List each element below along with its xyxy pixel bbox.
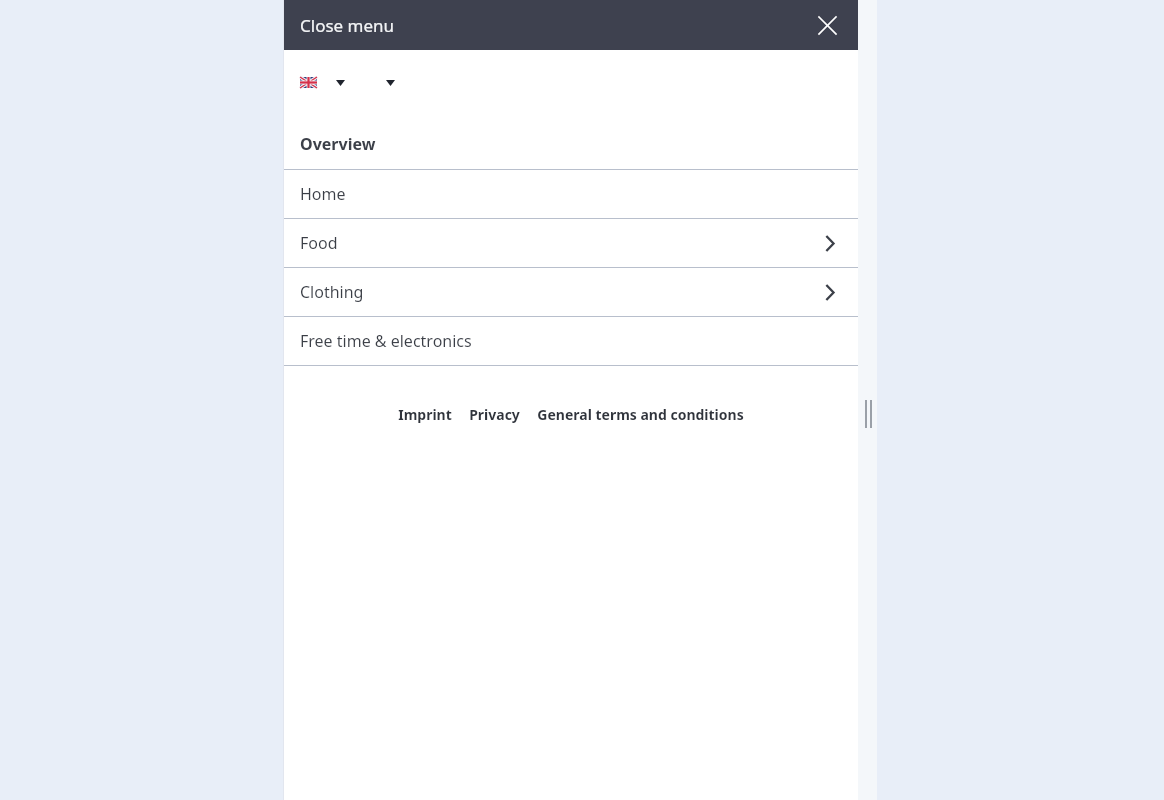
button[interactable]: Close menu xyxy=(300,14,395,37)
button[interactable]: General terms and conditions xyxy=(537,405,744,424)
staticText: Home xyxy=(300,183,346,205)
button[interactable]: Select currency xyxy=(386,80,395,86)
button[interactable]: Imprint xyxy=(398,405,452,424)
button[interactable]: Resize menu xyxy=(862,400,874,428)
staticText: Food xyxy=(300,232,338,254)
staticText: Overview xyxy=(300,133,376,155)
button[interactable]: Home xyxy=(283,170,858,218)
staticText: Free time & electronics xyxy=(300,330,472,352)
button[interactable]: Privacy xyxy=(469,405,520,424)
button[interactable]: Close menu xyxy=(810,8,844,42)
button[interactable]: Food xyxy=(283,219,858,267)
button[interactable]: Clothing xyxy=(283,268,858,316)
staticText: Clothing xyxy=(300,281,364,303)
button[interactable]: Select language xyxy=(300,77,345,88)
button[interactable]: Free time & electronics xyxy=(283,317,858,365)
